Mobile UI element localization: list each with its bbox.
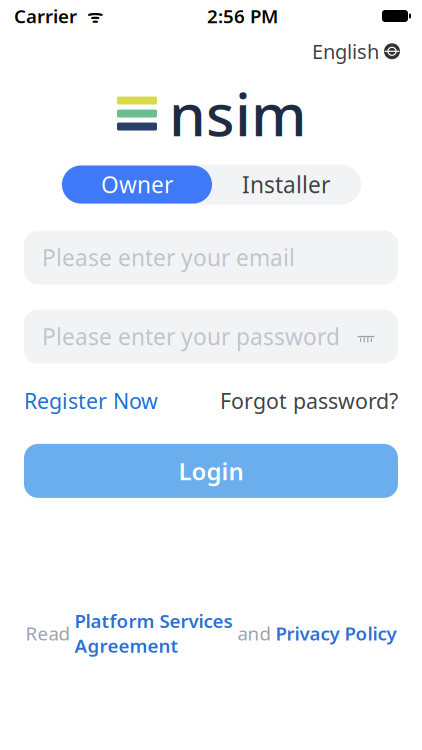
staticText: Privacy Policy (275, 621, 396, 646)
staticText: and (232, 621, 275, 646)
staticText: Installer (242, 169, 330, 200)
button[interactable]: Change language, English (306, 34, 406, 69)
staticText: Please enter your password (42, 321, 340, 352)
staticText: nsim (169, 75, 307, 152)
button[interactable]: Forgot password? (220, 384, 398, 418)
button[interactable]: Show password (352, 323, 380, 351)
staticText: Please enter your email (42, 242, 295, 273)
staticText: Forgot password? (220, 387, 398, 415)
staticText: ᯤ (77, 4, 103, 27)
staticText: Login (178, 455, 243, 487)
staticText: Carrier (14, 4, 77, 28)
button[interactable]: Login (24, 444, 398, 498)
staticText: English (312, 38, 379, 65)
staticText: Owner (101, 169, 173, 200)
button[interactable]: Owner (62, 166, 212, 204)
button[interactable]: Platform Services Agreement (74, 608, 232, 658)
staticText: 2:56 PM (207, 4, 278, 28)
button[interactable]: Installer (212, 166, 360, 204)
button[interactable]: Register Now (24, 384, 158, 418)
button[interactable]: Privacy Policy (275, 621, 396, 646)
staticText: Read (25, 621, 74, 646)
staticText: Platform Services Agreement (74, 608, 232, 658)
staticText: Register Now (24, 387, 158, 415)
